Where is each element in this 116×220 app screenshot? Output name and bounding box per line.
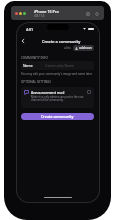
button[interactable]: Announcement mod: [21, 87, 94, 108]
staticText: adshaan: [79, 46, 92, 50]
staticText: Name: [23, 63, 33, 68]
button[interactable]: Record screen: [85, 11, 90, 16]
staticText: COMMUNITY INFO: [21, 56, 48, 60]
staticText: Announcement mod: [31, 90, 65, 95]
staticText: Community Name: [45, 63, 74, 68]
staticText: iOS 17.0: [34, 14, 45, 18]
staticText: Make it so only admins can post to the r…: [31, 95, 85, 101]
staticText: Create a community: [42, 39, 81, 44]
staticText: You may edit your community's image and …: [21, 72, 93, 76]
staticText: iPhone 15 Pro: [34, 9, 59, 14]
staticText: OPTIONAL SETTINGS: [21, 80, 51, 84]
button[interactable]: Name: [21, 61, 94, 70]
button[interactable]: Toggle announcement mode: [87, 90, 91, 94]
button[interactable]: Rotate device: [94, 11, 99, 16]
button[interactable]: Back: [19, 37, 26, 44]
staticText: Create community: [41, 114, 74, 119]
button[interactable]: Create community: [21, 113, 94, 120]
staticText: 4:01: [26, 27, 34, 32]
staticText: u/its: [64, 46, 71, 50]
button[interactable]: adshaan: [73, 45, 94, 51]
